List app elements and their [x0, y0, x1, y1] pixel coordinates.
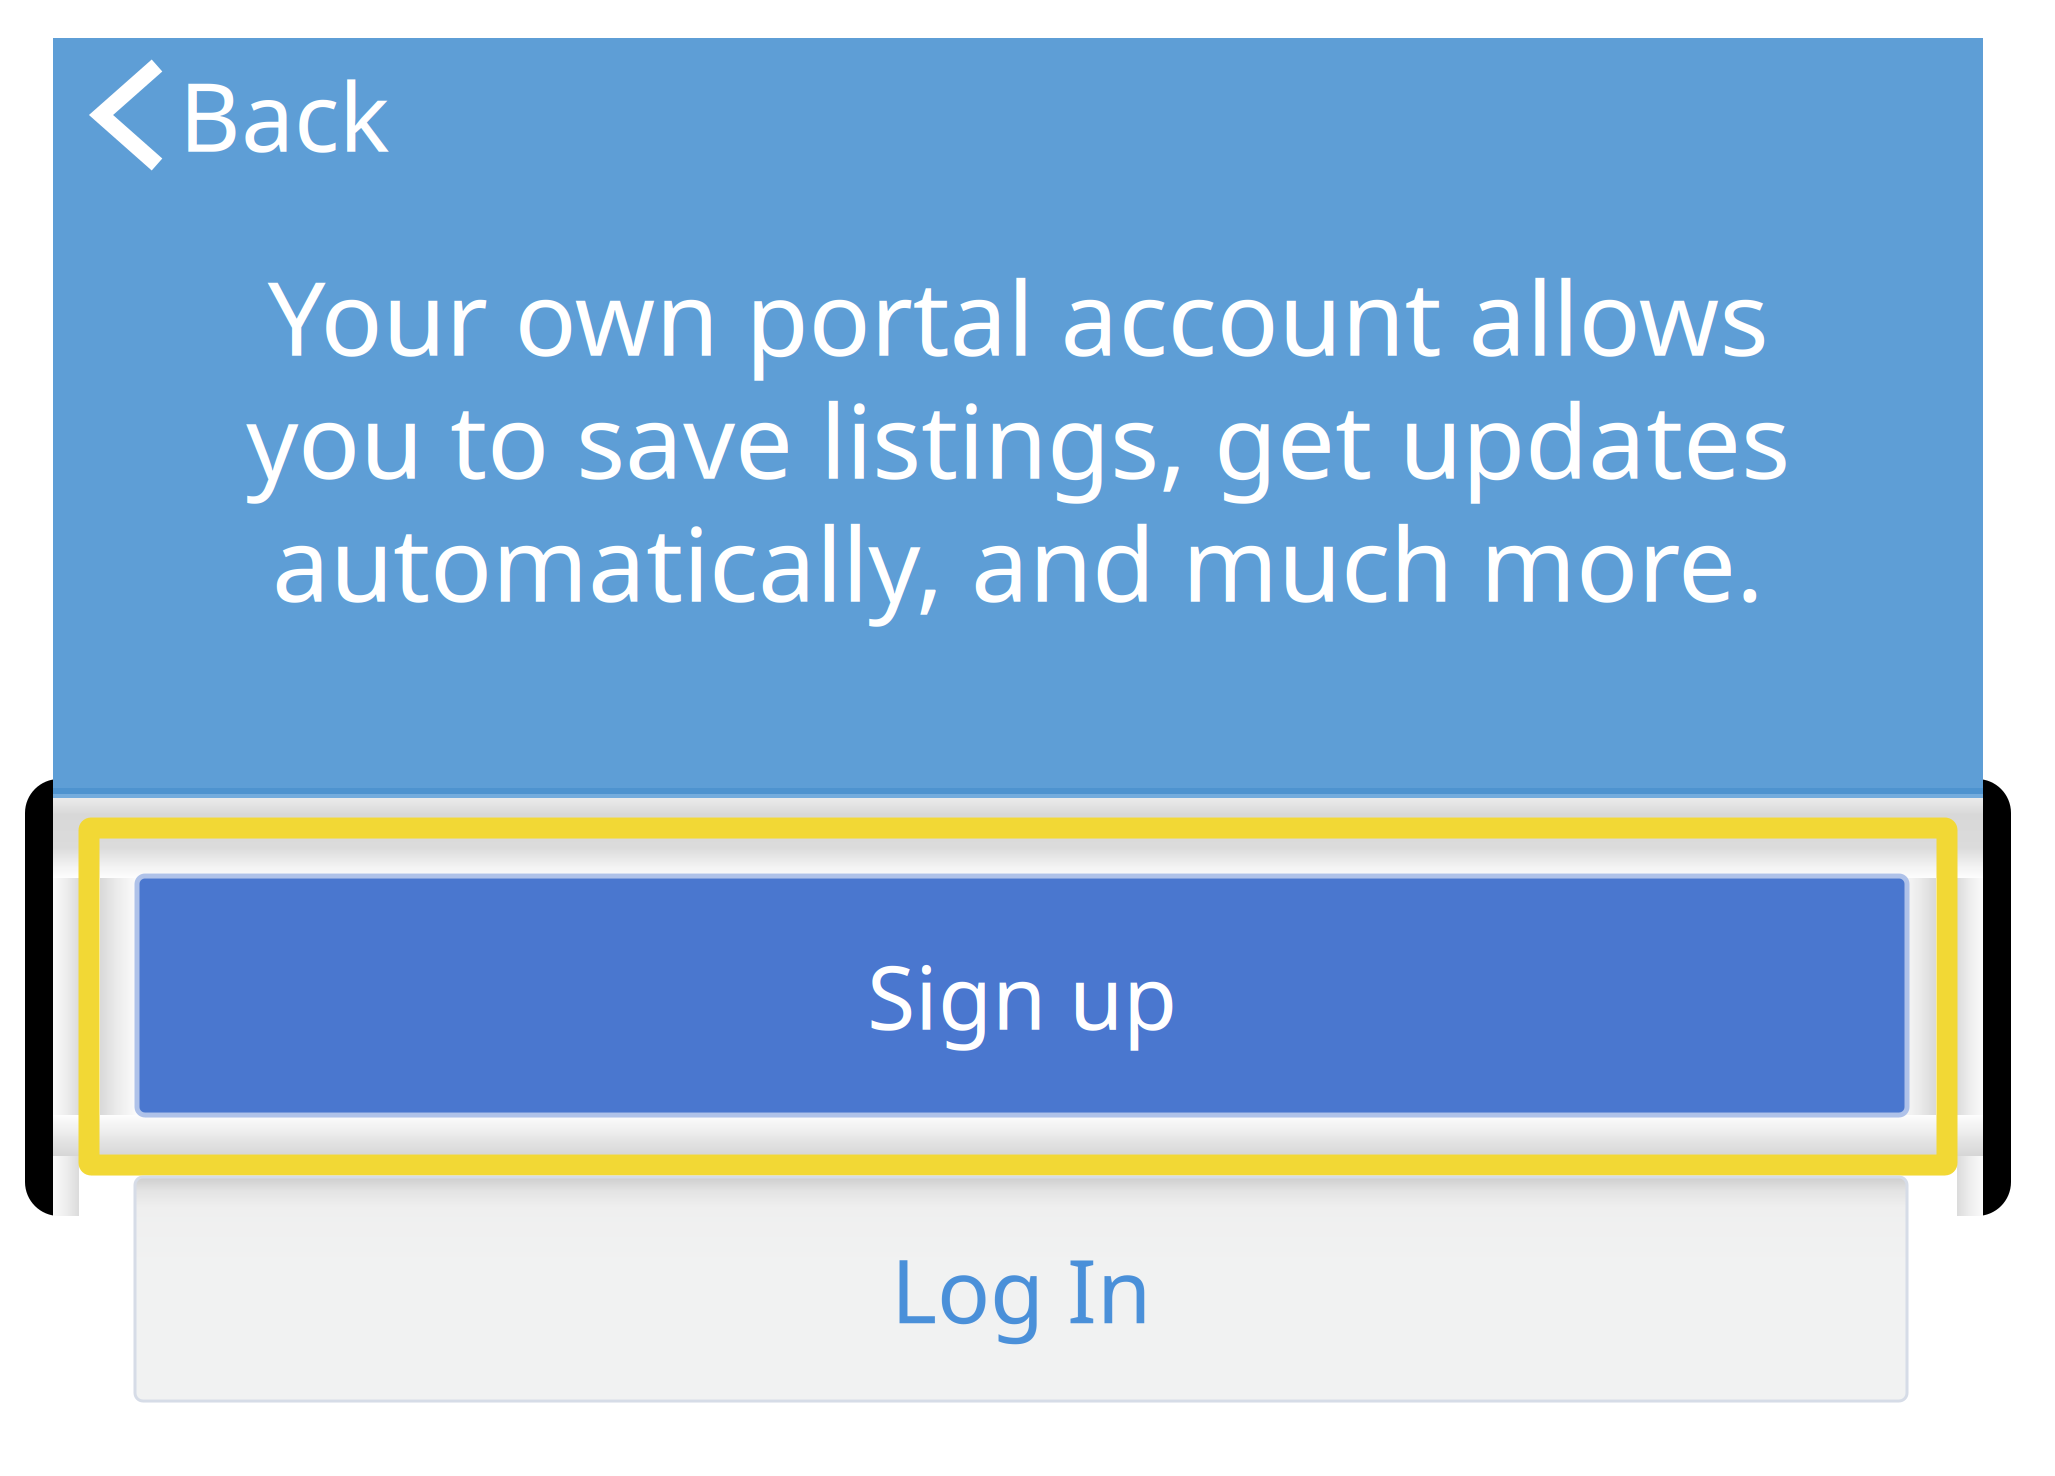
- button[interactable]: Sign up: [137, 876, 1907, 1115]
- staticText: you to save listings, get updates: [246, 371, 1790, 507]
- button[interactable]: Log In: [135, 1177, 1907, 1401]
- staticText: Back: [179, 52, 390, 178]
- staticText: Sign up: [867, 937, 1177, 1054]
- button[interactable]: Back: [53, 38, 389, 184]
- staticText: Log In: [891, 1231, 1151, 1347]
- staticText: automatically, and much more.: [272, 494, 1764, 630]
- staticText: Your own portal account allows: [267, 248, 1768, 384]
